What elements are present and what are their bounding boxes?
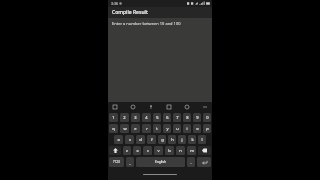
button[interactable]: Toolbar action 5 [183, 103, 191, 111]
button[interactable]: 6 [163, 113, 171, 122]
button[interactable]: q [109, 124, 118, 133]
staticText: n [179, 148, 182, 153]
button[interactable]: , [126, 157, 134, 167]
button[interactable]: o [193, 124, 201, 133]
button[interactable]: 9 [193, 113, 201, 122]
staticText: 3 [134, 115, 137, 120]
staticText: 8 [186, 115, 189, 120]
staticText: u [176, 126, 179, 131]
button[interactable]: Toolbar action 3 [147, 103, 155, 111]
button[interactable]: m [187, 146, 196, 155]
staticText: e [134, 126, 137, 131]
staticText: j [181, 137, 183, 142]
button[interactable]: Compile Result [108, 7, 212, 18]
staticText: a [117, 137, 120, 142]
button[interactable]: y [163, 124, 171, 133]
staticText: b [168, 148, 171, 153]
button[interactable]: Shift [109, 146, 121, 155]
button[interactable]: p [203, 124, 211, 133]
staticText: h [171, 137, 174, 142]
staticText: 2 [123, 115, 126, 120]
button[interactable]: . [187, 157, 195, 167]
staticText: 3:36 [111, 1, 118, 6]
staticText: Compile Result [112, 9, 148, 16]
staticText: 7 [176, 115, 179, 120]
button[interactable]: 1 [109, 113, 118, 122]
button[interactable]: 2 [120, 113, 129, 122]
button[interactable]: c [143, 146, 152, 155]
button[interactable]: 7 [173, 113, 181, 122]
button[interactable]: w [120, 124, 129, 133]
button[interactable]: l [198, 135, 206, 144]
button[interactable]: i [183, 124, 191, 133]
staticText: q [112, 126, 115, 131]
staticText: s [129, 137, 131, 142]
button[interactable]: b [165, 146, 174, 155]
button[interactable]: Toolbar action 4 [165, 103, 173, 111]
button[interactable]: Enter [197, 157, 211, 167]
staticText: r [146, 126, 148, 131]
staticText: g [161, 137, 164, 142]
staticText: 4 [145, 115, 148, 120]
staticText: 1 [112, 115, 115, 120]
staticText: k [191, 137, 194, 142]
staticText: English [155, 160, 166, 164]
staticText: o [196, 126, 199, 131]
staticText: d [139, 137, 142, 142]
button[interactable]: 4 [142, 113, 151, 122]
button[interactable]: j [178, 135, 186, 144]
staticText: x [136, 148, 139, 153]
button[interactable]: r [142, 124, 151, 133]
button[interactable]: 5 [153, 113, 161, 122]
staticText: Enter a number between 10 and 100 [112, 21, 181, 26]
button[interactable]: f [147, 135, 156, 144]
button[interactable]: v [154, 146, 163, 155]
button[interactable]: z [123, 146, 131, 155]
staticText: t [156, 126, 158, 131]
staticText: i [186, 126, 188, 131]
button[interactable]: Toolbar action 2 [129, 103, 137, 111]
button[interactable]: t [153, 124, 161, 133]
staticText: l [201, 137, 203, 142]
button[interactable]: s [125, 135, 134, 144]
button[interactable]: Toolbar action 1 [111, 103, 119, 111]
staticText: . [190, 160, 192, 165]
button[interactable]: a [114, 135, 123, 144]
button[interactable]: g [158, 135, 166, 144]
staticText: v [157, 148, 160, 153]
staticText: , [129, 160, 131, 165]
button[interactable]: n [176, 146, 185, 155]
button[interactable]: d [136, 135, 145, 144]
button[interactable]: Backspace [198, 146, 211, 155]
button[interactable]: ?123 [109, 157, 124, 167]
staticText: y [166, 126, 169, 131]
staticText: ?123 [113, 160, 120, 164]
button[interactable]: 3 [131, 113, 140, 122]
staticText: 6 [166, 115, 169, 120]
button[interactable]: e [131, 124, 140, 133]
staticText: z [126, 148, 128, 153]
button[interactable]: 0 [203, 113, 211, 122]
staticText: 9 [196, 115, 199, 120]
staticText: c [147, 148, 149, 153]
button[interactable]: u [173, 124, 181, 133]
button[interactable]: More [201, 103, 209, 111]
staticText: w [123, 126, 127, 131]
button[interactable]: 8 [183, 113, 191, 122]
staticText: 0 [206, 115, 209, 120]
button[interactable]: English [136, 157, 185, 167]
button[interactable]: h [168, 135, 176, 144]
button[interactable]: x [133, 146, 141, 155]
button[interactable]: k [188, 135, 196, 144]
staticText: m [190, 148, 194, 153]
staticText: 5 [156, 115, 159, 120]
staticText: p [206, 126, 209, 131]
staticText: f [151, 137, 153, 142]
